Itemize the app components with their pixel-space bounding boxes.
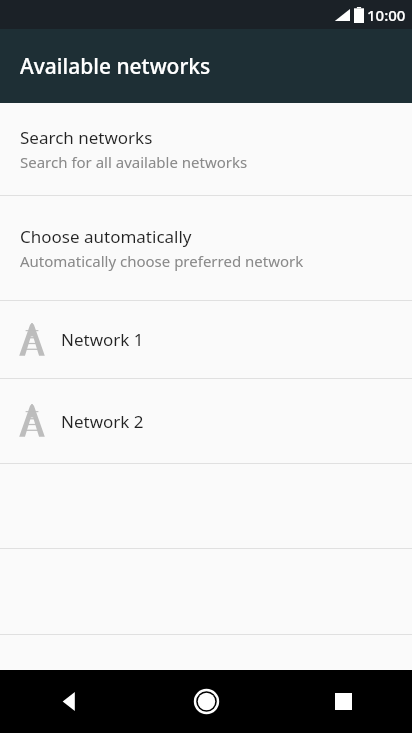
button[interactable]: Choose automatically: [0, 196, 412, 300]
button[interactable]: Back: [0, 670, 138, 733]
button[interactable]: Cell tower: [0, 379, 412, 463]
staticText: Search for all available networks: [20, 152, 248, 172]
button[interactable]: Recents: [275, 670, 412, 733]
staticText: Search networks: [20, 126, 153, 149]
button[interactable]: Search networks: [0, 103, 412, 195]
button[interactable]: Home: [138, 670, 275, 733]
button[interactable]: Cell tower: [0, 301, 412, 378]
other: Cell tower: [16, 403, 48, 439]
staticText: Automatically choose preferred network: [20, 251, 304, 271]
staticText: 10:00: [367, 5, 406, 25]
staticText: Network 2: [61, 410, 144, 433]
staticText: Network 1: [61, 328, 144, 351]
staticText: Choose automatically: [20, 225, 192, 248]
other: Cell tower: [16, 322, 48, 358]
staticText: Available networks: [20, 52, 211, 81]
